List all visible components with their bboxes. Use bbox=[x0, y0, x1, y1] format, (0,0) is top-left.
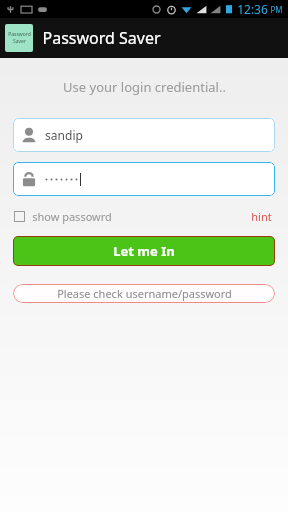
staticText: show passowrd bbox=[32, 209, 112, 224]
staticText: Let me In bbox=[113, 242, 175, 260]
staticText: hint bbox=[251, 209, 272, 224]
staticText: Password Saver bbox=[42, 27, 161, 49]
staticText: Use your login crediential.. bbox=[63, 78, 226, 96]
staticText: Please check username/password bbox=[57, 286, 232, 301]
button[interactable]: sandip bbox=[13, 118, 275, 152]
staticText: Saver bbox=[13, 38, 26, 45]
staticText: sandip bbox=[45, 127, 83, 143]
button[interactable]: hint bbox=[249, 207, 274, 226]
staticText: 12:36 bbox=[237, 1, 268, 17]
button[interactable] bbox=[13, 162, 275, 196]
staticText: PM bbox=[270, 4, 283, 15]
button[interactable]: show passowrd bbox=[14, 209, 112, 224]
button[interactable]: App icon bbox=[5, 24, 33, 52]
button[interactable]: Let me In bbox=[13, 236, 275, 266]
staticText: Password bbox=[8, 31, 31, 38]
